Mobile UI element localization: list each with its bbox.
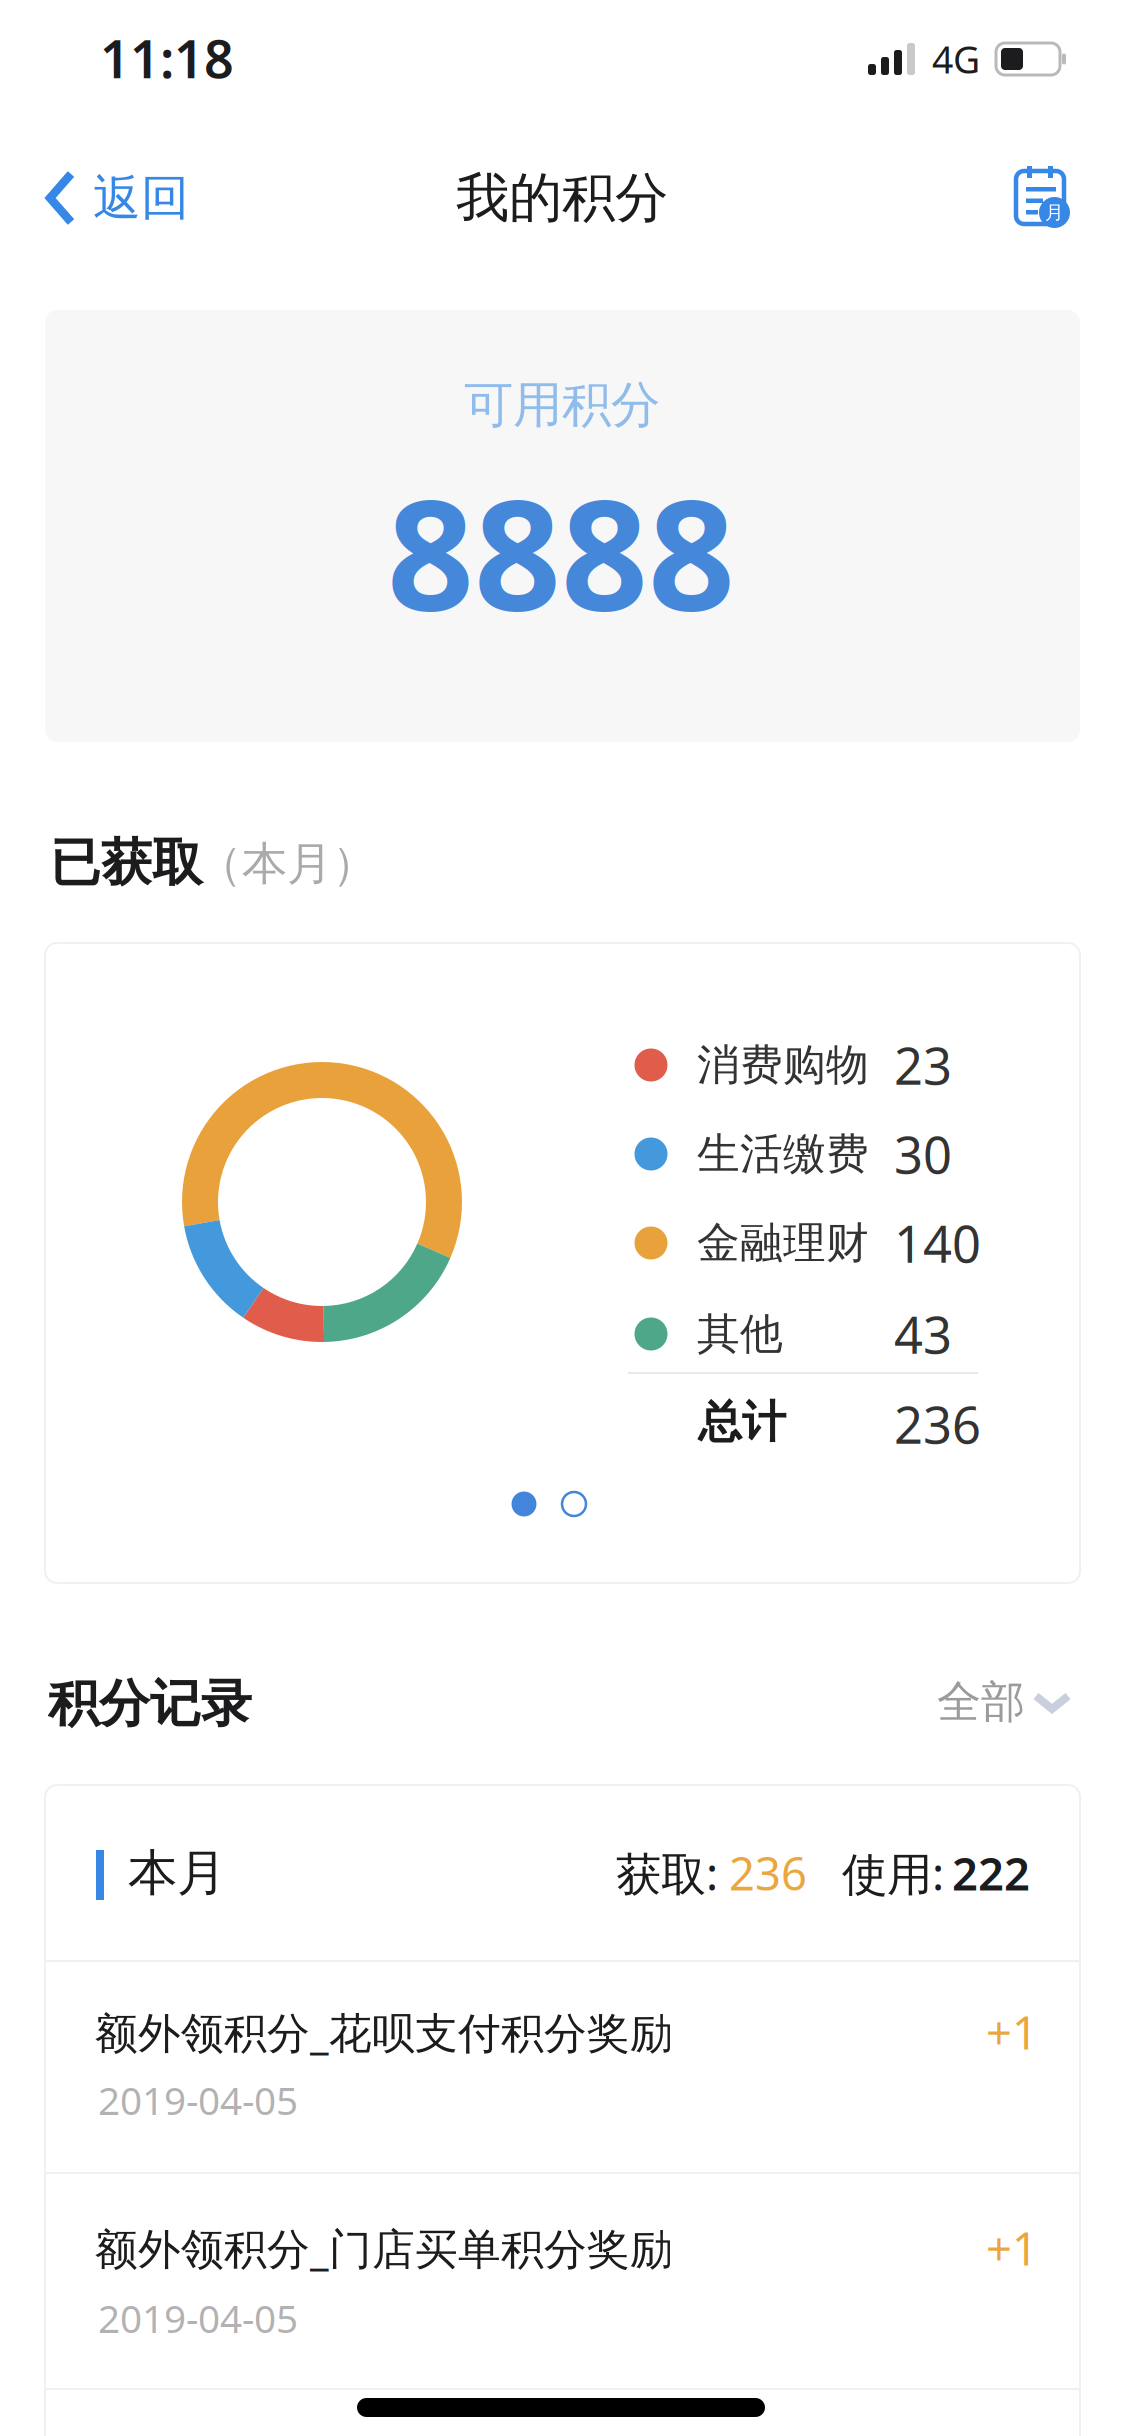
staticText: 额外领积分_花呗支付积分奖励 [95, 2004, 673, 2060]
staticText: 43 [894, 1300, 952, 1368]
staticText: 11:18 [100, 23, 234, 93]
staticText: 236 [894, 1390, 981, 1458]
staticText: 140 [894, 1209, 981, 1277]
staticText: 可用积分 [464, 375, 660, 435]
staticText: 已获取 [50, 832, 203, 894]
button[interactable]: 额外领积分_门店买单积分奖励 [45, 2174, 1080, 2388]
staticText: 其他 [697, 1308, 783, 1360]
staticText: 236 [729, 1843, 807, 1903]
button[interactable]: 额外领积分_花呗支付积分奖励 [45, 1962, 1080, 2172]
staticText: 我的积分 [456, 165, 668, 231]
staticText: 全部 [937, 1675, 1025, 1729]
button[interactable]: 返回 [45, 168, 205, 228]
staticText: 2019-04-05 [98, 2074, 298, 2126]
staticText: 返回 [93, 168, 189, 227]
staticText: 2019-04-05 [98, 2292, 298, 2344]
staticText: 23 [894, 1031, 952, 1099]
staticText: +1 [986, 2002, 1038, 2062]
staticText: （本月） [197, 836, 377, 892]
staticText: 30 [894, 1120, 952, 1188]
staticText: 4G [932, 34, 980, 84]
staticText: 消费购物 [697, 1039, 869, 1091]
staticText: 获取: [616, 1843, 730, 1903]
button[interactable]: 全部 [930, 1668, 1080, 1736]
staticText: 生活缴费 [697, 1128, 869, 1180]
staticText: 金融理财 [697, 1217, 869, 1269]
staticText: 本月 [128, 1843, 226, 1903]
staticText: 8888 [387, 450, 735, 652]
staticText: 222 [952, 1843, 1030, 1903]
staticText: 月 [1045, 201, 1064, 224]
staticText: 积分记录 [48, 1673, 252, 1735]
staticText: 使用: [842, 1843, 956, 1903]
staticText: +1 [986, 2218, 1038, 2278]
button[interactable]: 月账单 [1016, 166, 1070, 228]
staticText: 额外领积分_门店买单积分奖励 [95, 2220, 673, 2276]
staticText: 总计 [698, 1395, 786, 1449]
